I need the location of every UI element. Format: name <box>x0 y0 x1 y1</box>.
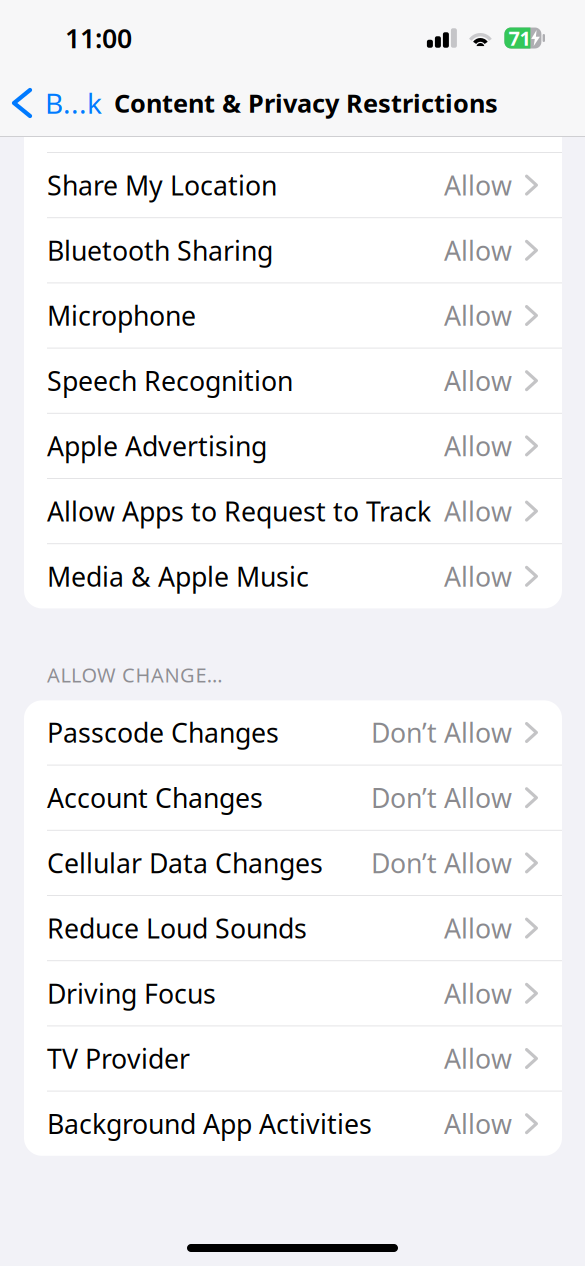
staticText: Cellular Data Changes <box>47 845 323 881</box>
button[interactable]: Speech Recognition <box>24 349 562 413</box>
staticText: Apple Advertising <box>47 428 267 464</box>
staticText: Driving Focus <box>47 976 216 1011</box>
staticText: Allow <box>444 1106 512 1141</box>
staticText: Speech Recognition <box>47 363 293 398</box>
staticText: Reduce Loud Sounds <box>47 910 307 946</box>
button[interactable]: Bluetooth Sharing <box>24 218 562 282</box>
button[interactable]: Driving Focus <box>24 961 562 1025</box>
button[interactable]: Share My Location <box>24 153 562 217</box>
staticText: Content & Privacy Restrictions <box>114 86 498 120</box>
staticText: Allow <box>444 910 512 946</box>
staticText: 11:00 <box>65 20 132 56</box>
button[interactable]: TV Provider <box>24 1026 562 1091</box>
staticText: Account Changes <box>47 780 263 815</box>
staticText: B...k <box>45 84 102 122</box>
button[interactable]: Account Changes <box>24 766 562 830</box>
staticText: Allow <box>444 559 512 594</box>
staticText: 71 <box>508 25 530 51</box>
staticText: Background App Activities <box>47 1106 372 1141</box>
button[interactable]: Apple Advertising <box>24 414 562 478</box>
button[interactable]: Reduce Loud Sounds <box>24 896 562 960</box>
button[interactable]: Cellular Data Changes <box>24 831 562 895</box>
staticText: Passcode Changes <box>47 715 279 750</box>
staticText: Media & Apple Music <box>47 559 309 594</box>
staticText: Allow <box>444 976 512 1011</box>
staticText: Allow <box>444 493 512 529</box>
staticText: Allow <box>444 1041 512 1076</box>
button[interactable]: Microphone <box>24 283 562 348</box>
button[interactable]: Background App Activities <box>24 1092 562 1156</box>
staticText: Allow <box>444 167 512 203</box>
staticText: Allow <box>444 233 512 268</box>
button[interactable]: Media & Apple Music <box>24 544 562 608</box>
staticText: ALLOW CHANGES: <box>47 661 223 688</box>
staticText: Allow <box>444 298 512 333</box>
staticText: Microphone <box>47 298 196 333</box>
staticText: Allow Apps to Request to Track <box>47 493 431 529</box>
button[interactable]: Allow Apps to Request to Track <box>24 479 562 543</box>
staticText: Share My Location <box>47 167 277 203</box>
staticText: Allow <box>444 363 512 398</box>
staticText: Allow <box>444 428 512 464</box>
staticText: Don’t Allow <box>371 845 512 881</box>
staticText: Bluetooth Sharing <box>47 233 273 268</box>
staticText: Don’t Allow <box>371 780 512 815</box>
staticText: Don’t Allow <box>371 715 512 750</box>
button[interactable]: B...k <box>0 76 108 130</box>
staticText: TV Provider <box>47 1041 190 1076</box>
button[interactable]: Passcode Changes <box>24 700 562 765</box>
